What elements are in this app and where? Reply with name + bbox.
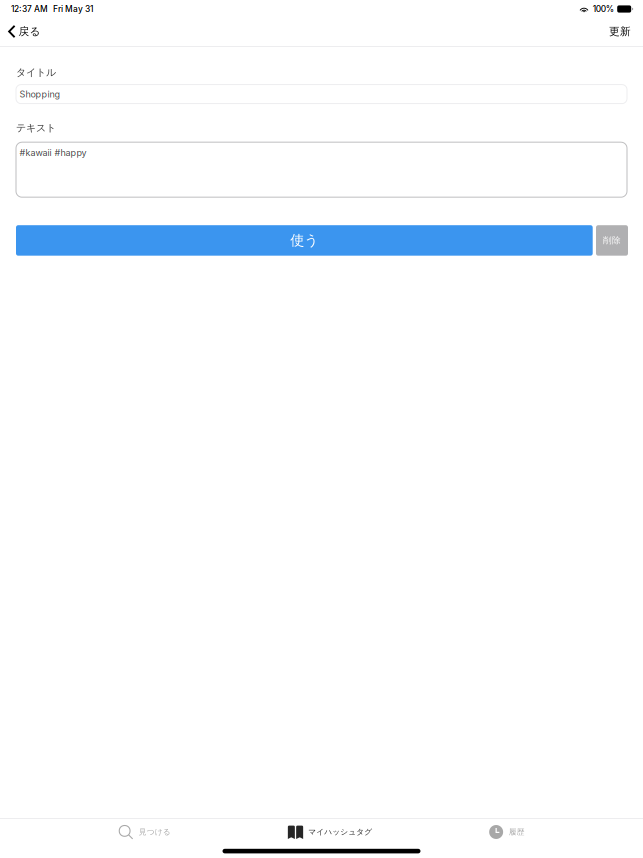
staticText: #kawaii #happy [19, 147, 86, 158]
staticText: Shopping [19, 89, 60, 100]
staticText: マイハッシュタグ [308, 827, 372, 837]
staticText: 削除 [603, 235, 621, 246]
staticText: 100% [593, 4, 614, 14]
button[interactable]: 履歴 [489, 820, 525, 844]
staticText: 使う [290, 232, 318, 249]
button[interactable]: 削除 [596, 225, 628, 256]
button[interactable]: 戻る [0, 18, 50, 45]
staticText: 更新 [609, 25, 631, 38]
button[interactable]: Shopping [16, 85, 627, 104]
staticText: テキスト [16, 122, 56, 134]
button[interactable]: #kawaii #happy [16, 142, 627, 197]
staticText: 履歴 [509, 827, 525, 837]
button[interactable]: マイハッシュタグ [288, 820, 372, 844]
staticText: 戻る [18, 25, 40, 38]
button[interactable]: 使う [16, 225, 593, 256]
button[interactable]: 見つける [118, 820, 171, 844]
staticText: タイトル [16, 66, 56, 79]
staticText: Fri May 31 [53, 4, 93, 14]
staticText: 12:37 AM [11, 4, 48, 14]
staticText: 見つける [139, 827, 171, 837]
button[interactable]: 更新 [597, 18, 643, 45]
